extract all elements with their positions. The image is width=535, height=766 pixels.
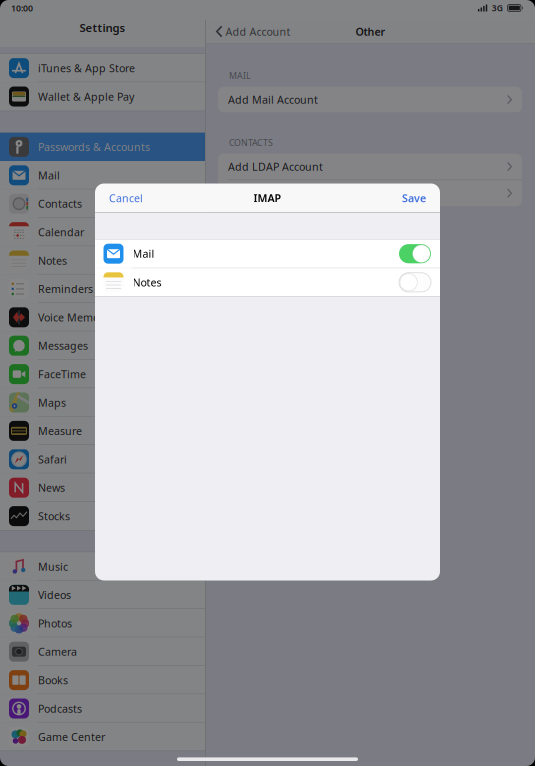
button[interactable]: Wallet & Apple Pay (0, 82, 205, 111)
button[interactable]: Videos (0, 581, 205, 609)
staticText: Contacts (38, 196, 82, 211)
staticText: Safari (38, 452, 67, 466)
button[interactable]: Add LDAP Account (218, 154, 522, 180)
staticText: Photos (38, 616, 72, 630)
staticText: Reminders (38, 282, 93, 296)
staticText: Add Account (225, 24, 290, 39)
button[interactable]: Voice Memos (0, 303, 205, 331)
staticText: 3G (492, 2, 503, 14)
button[interactable]: Photos (0, 609, 205, 637)
staticText: Game Center (38, 730, 105, 744)
staticText: FaceTime (38, 367, 86, 381)
staticText: Notes (38, 253, 67, 268)
staticText: Passwords & Accounts (38, 140, 150, 154)
staticText: Voice Memos (38, 310, 104, 324)
button[interactable]: Save (392, 183, 440, 212)
button[interactable]: Podcasts (0, 694, 205, 723)
staticText: Books (38, 673, 68, 687)
staticText: iTunes & App Store (38, 61, 135, 75)
staticText: Add LDAP Account (228, 159, 323, 174)
staticText: Save (402, 191, 426, 205)
button[interactable]: FaceTime (0, 360, 205, 388)
staticText: Add Mail Account (228, 92, 318, 107)
button[interactable]: Camera (0, 637, 205, 666)
staticText: Mail (132, 246, 154, 261)
staticText: Music (38, 559, 68, 574)
staticText: Settings (79, 20, 125, 35)
button[interactable]: Books (0, 666, 205, 694)
button[interactable]: Passwords & Accounts (0, 133, 205, 161)
button[interactable]: Measure (0, 417, 205, 445)
button[interactable]: Messages (0, 331, 205, 360)
button[interactable]: Safari (0, 445, 205, 473)
staticText: Stocks (38, 509, 70, 523)
button[interactable]: Cancel (95, 183, 153, 212)
button[interactable]: Music (0, 552, 205, 581)
staticText: MAIL (229, 70, 251, 82)
button[interactable]: Notes (0, 246, 205, 275)
button[interactable]: Add CardDAV Account (218, 180, 522, 206)
staticText: Calendar (38, 225, 84, 239)
button[interactable]: Mail (95, 240, 440, 268)
button[interactable]: Maps (0, 388, 205, 417)
staticText: IMAP (253, 191, 281, 205)
button[interactable]: News (0, 473, 205, 502)
button[interactable]: iTunes & App Store (0, 54, 205, 82)
button[interactable]: Calendar (0, 218, 205, 246)
staticText: Camera (38, 644, 77, 659)
button[interactable]: Mail (0, 161, 205, 189)
staticText: Cancel (109, 191, 143, 205)
button[interactable]: Notes (95, 268, 440, 296)
button[interactable]: Reminders (0, 275, 205, 303)
staticText: Videos (38, 588, 71, 602)
staticText: Messages (38, 338, 88, 353)
staticText: News (38, 480, 65, 495)
staticText: 10:00 (11, 2, 33, 14)
button[interactable]: Add Account (206, 20, 290, 43)
staticText: Measure (38, 424, 82, 438)
button[interactable]: Contacts (0, 189, 205, 218)
staticText: Other (355, 24, 385, 39)
staticText: Notes (132, 275, 161, 289)
staticText: Podcasts (38, 701, 82, 716)
staticText: Add CardDAV Account (228, 186, 340, 200)
staticText: Maps (38, 395, 66, 410)
button[interactable]: Add Mail Account (218, 87, 522, 113)
staticText: Mail (38, 168, 60, 182)
staticText: CONTACTS (229, 137, 273, 149)
button[interactable]: Stocks (0, 502, 205, 530)
staticText: Wallet & Apple Pay (38, 89, 134, 104)
button[interactable]: Game Center (0, 723, 205, 751)
